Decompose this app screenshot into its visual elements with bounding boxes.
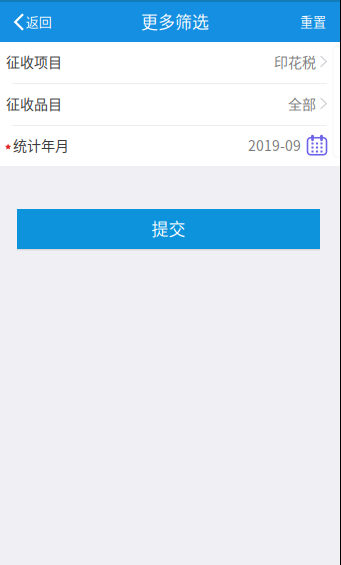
staticText: 全部 (288, 93, 316, 114)
staticText: 重置 (300, 11, 326, 30)
button[interactable]: 重置 (286, 2, 341, 42)
staticText: 征收项目 (6, 51, 62, 72)
staticText: 2019-09 (248, 135, 301, 155)
staticText: 印花税 (274, 51, 316, 72)
staticText: 提交 (151, 216, 185, 240)
staticText: 返回 (26, 11, 52, 30)
staticText: 征收品目 (6, 93, 62, 114)
button[interactable]: 征收项目 (0, 42, 341, 83)
button[interactable]: 统计年月 (0, 126, 341, 166)
button[interactable]: 返回 (0, 2, 64, 42)
staticText: 统计年月 (13, 135, 69, 155)
button[interactable]: 征收品目 (0, 84, 341, 125)
staticText: 更多筛选 (141, 9, 209, 33)
button[interactable]: 提交 (17, 209, 320, 251)
